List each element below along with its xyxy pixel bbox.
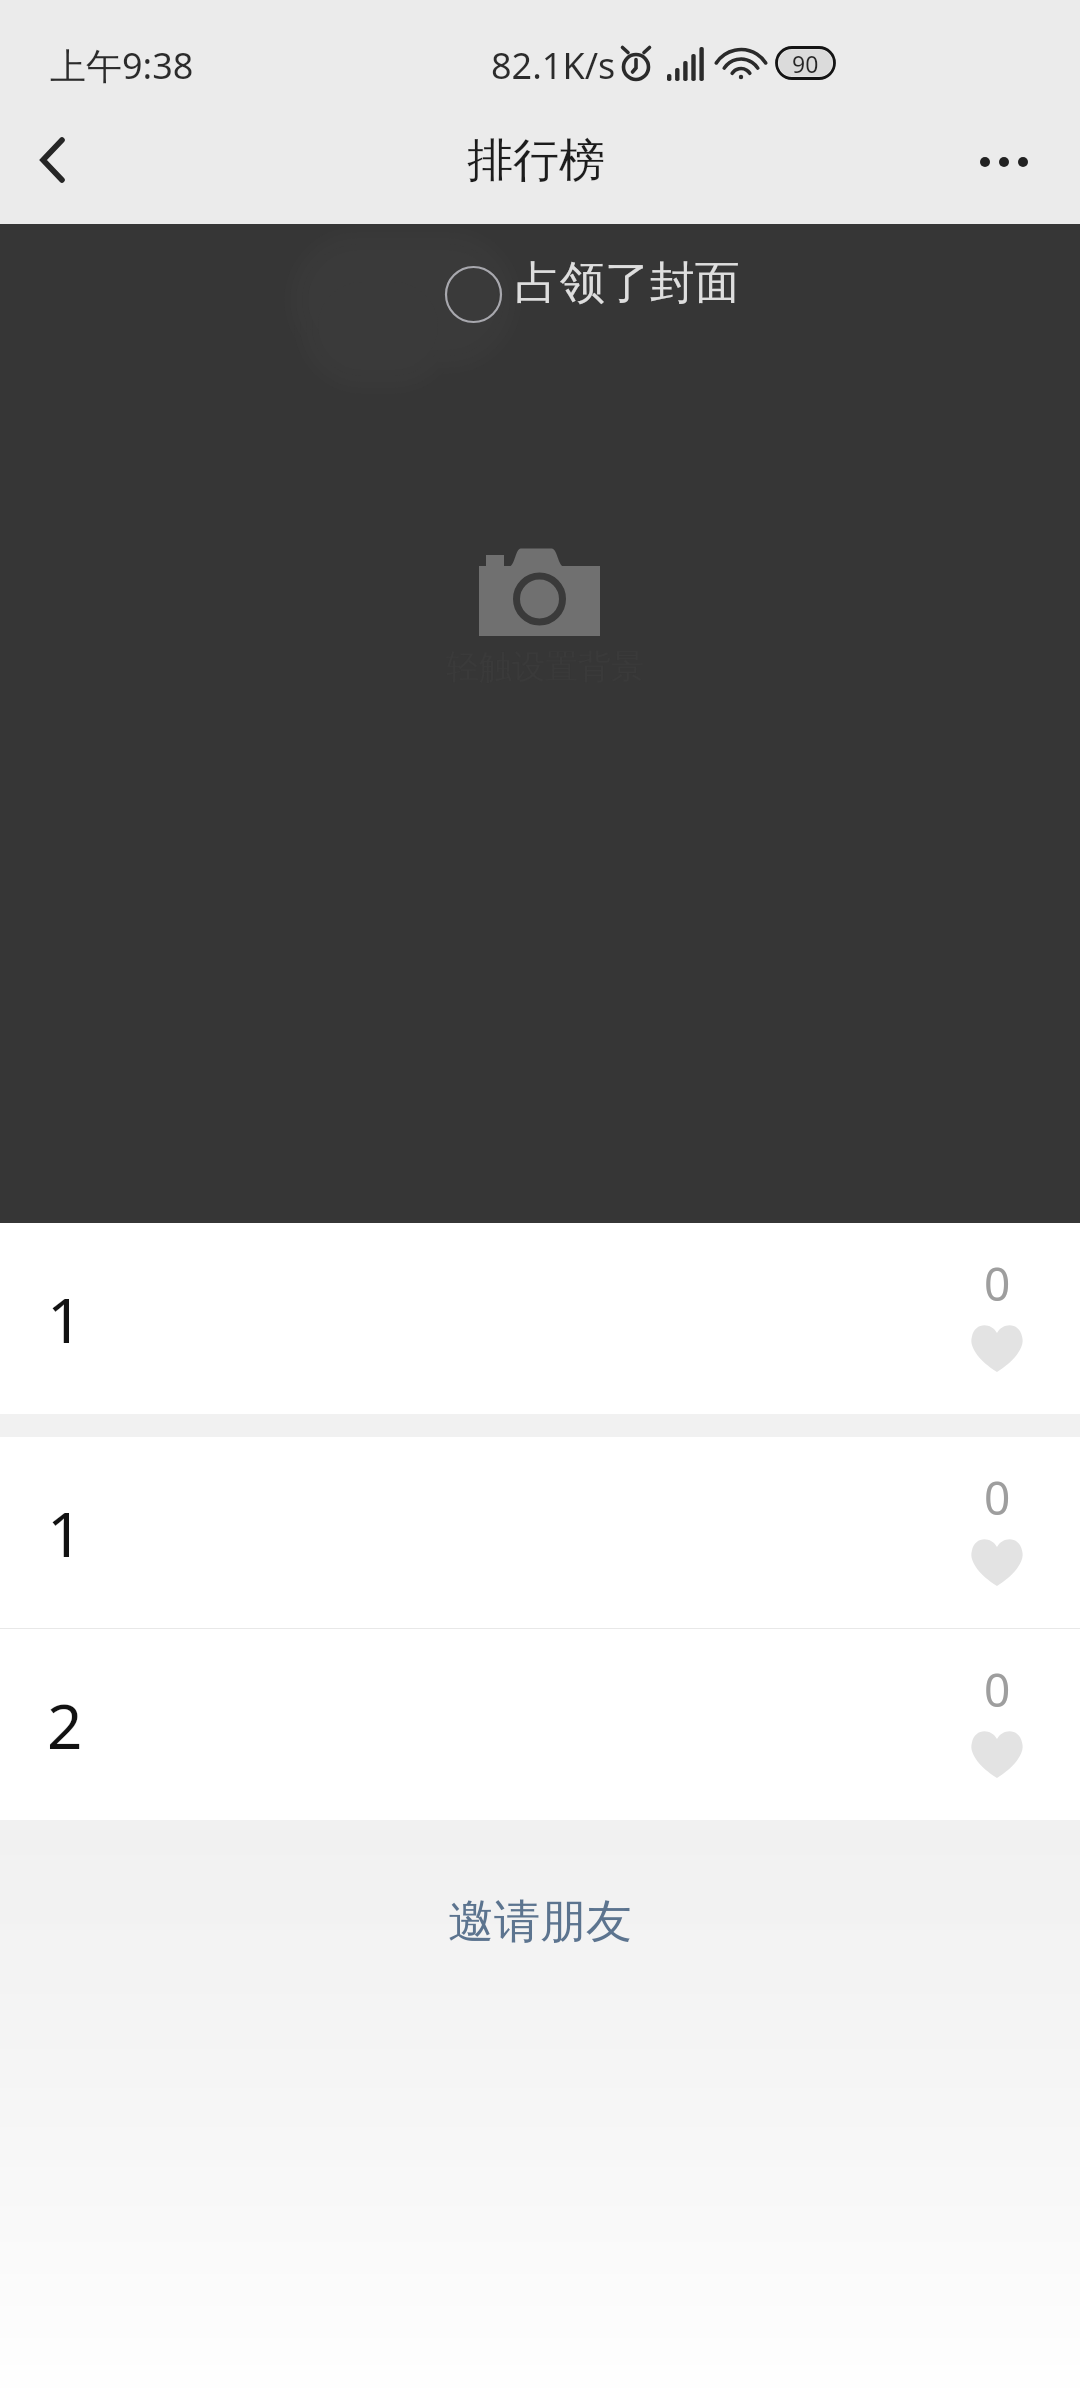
staticText: 1 <box>47 1491 83 1575</box>
staticText: 占领了封面 <box>515 255 740 312</box>
staticText: 0 <box>984 1252 1011 1315</box>
staticText: 1 <box>47 1277 83 1361</box>
staticText: 82.1K/s <box>491 41 616 90</box>
button[interactable]: 1 <box>0 1223 1080 1414</box>
staticText: 邀请朋友 <box>448 1893 632 1951</box>
staticText: 0 <box>984 1466 1011 1529</box>
button[interactable]: 邀请朋友 <box>430 1879 650 1965</box>
button[interactable]: 1 <box>0 1437 1080 1628</box>
staticText: 2 <box>47 1683 83 1767</box>
button[interactable]: Back <box>0 112 104 224</box>
button[interactable]: More options <box>948 106 1060 218</box>
staticText: 排行榜 <box>467 132 605 190</box>
staticText: 90 <box>792 48 819 79</box>
staticText: 0 <box>984 1658 1011 1721</box>
staticText: 上午9:38 <box>50 41 194 90</box>
button[interactable]: Set cover photo <box>0 224 1080 1223</box>
button[interactable]: 2 <box>0 1629 1080 1820</box>
